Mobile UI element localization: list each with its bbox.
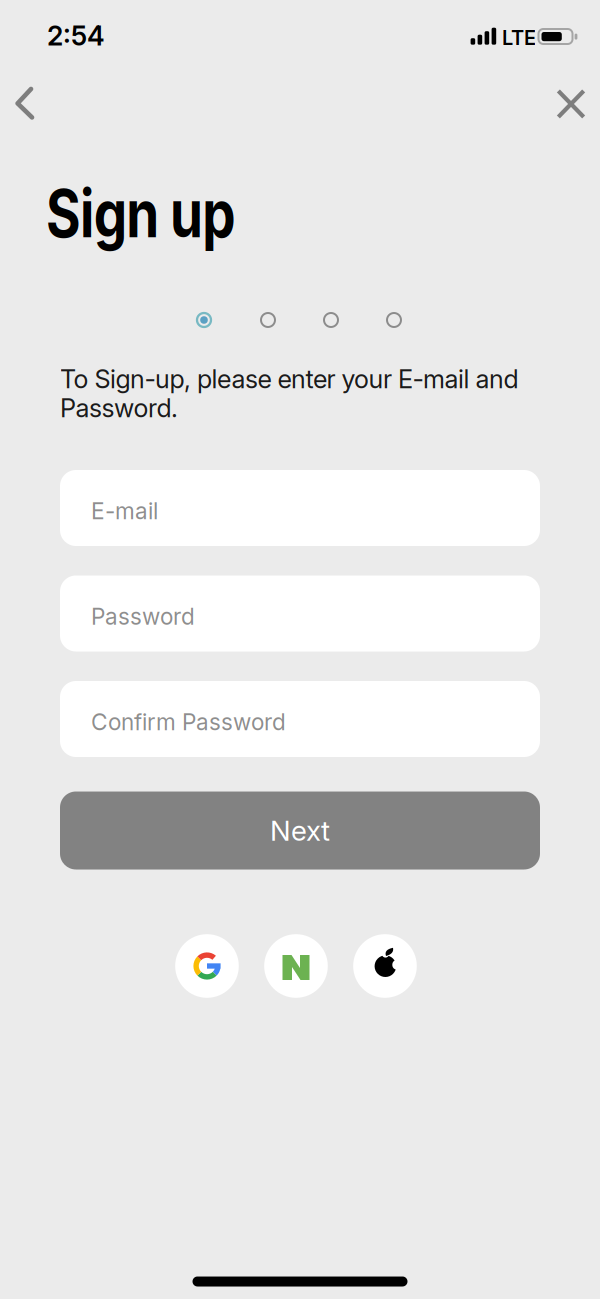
staticText: Confirm Password bbox=[91, 709, 286, 735]
button[interactable] bbox=[3, 81, 47, 125]
button[interactable]: Confirm Password bbox=[60, 681, 540, 757]
staticText: E-mail bbox=[91, 498, 158, 524]
button[interactable] bbox=[549, 81, 593, 125]
button[interactable] bbox=[175, 934, 239, 998]
button[interactable]: E-mail bbox=[60, 470, 540, 546]
button[interactable]: Password bbox=[60, 575, 540, 651]
staticText: 2:54 bbox=[47, 20, 105, 51]
staticText: To Sign-up, please enter your E-mail and bbox=[60, 364, 518, 394]
staticText: Sign up bbox=[46, 175, 280, 252]
button[interactable] bbox=[353, 934, 417, 998]
staticText: Password. bbox=[60, 393, 178, 423]
staticText: LTE bbox=[502, 26, 536, 50]
staticText: Next bbox=[270, 814, 330, 847]
button[interactable]: Next bbox=[60, 791, 540, 869]
staticText: Password bbox=[91, 603, 195, 630]
button[interactable] bbox=[264, 934, 328, 998]
